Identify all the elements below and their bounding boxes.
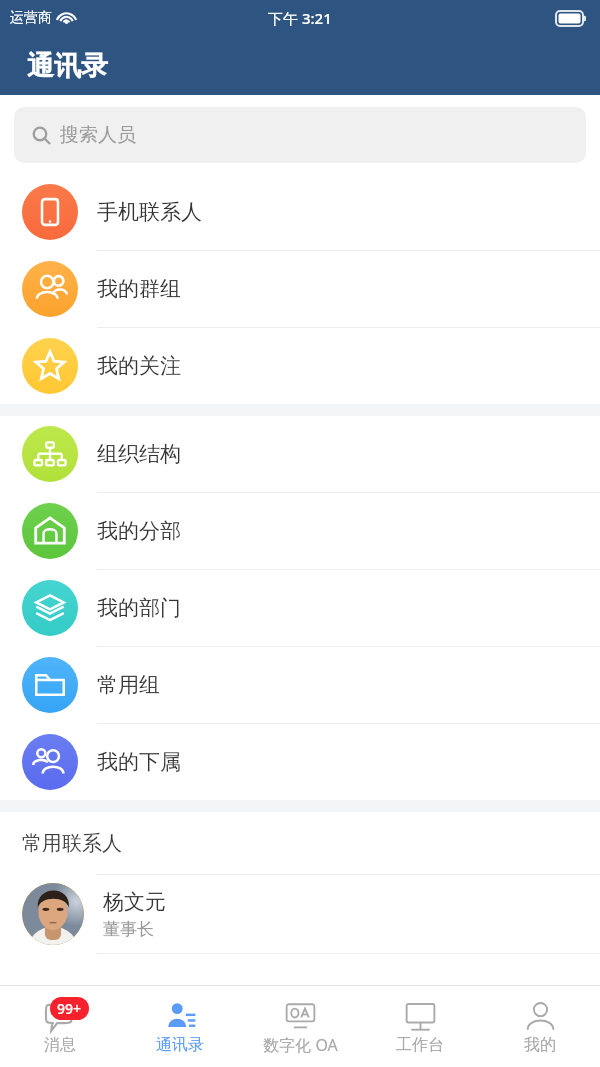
button[interactable]: 99+ bbox=[0, 986, 120, 1067]
button[interactable]: 我的部门 bbox=[0, 570, 600, 646]
staticText: 我的 bbox=[524, 1035, 556, 1055]
staticText: 工作台 bbox=[396, 1035, 444, 1055]
button[interactable]: 我的群组 bbox=[0, 251, 600, 327]
staticText: 通讯录 bbox=[27, 49, 108, 83]
staticText: 杨文元 bbox=[103, 889, 166, 915]
staticText: 我的群组 bbox=[97, 276, 181, 302]
staticText: 99+ bbox=[57, 999, 82, 1018]
button[interactable]: 我的 bbox=[480, 986, 600, 1067]
staticText: 数字化 OA bbox=[263, 1034, 338, 1056]
button[interactable]: 通讯录 bbox=[120, 986, 240, 1067]
button[interactable]: 我的分部 bbox=[0, 493, 600, 569]
button[interactable]: 组织结构 bbox=[0, 416, 600, 492]
staticText: 消息 bbox=[44, 1035, 76, 1055]
staticText: 我的关注 bbox=[97, 353, 181, 379]
button[interactable]: 杨文元 bbox=[0, 875, 600, 953]
button[interactable]: 工作台 bbox=[360, 986, 480, 1067]
staticText: 常用联系人 bbox=[22, 831, 122, 856]
staticText: 我的分部 bbox=[97, 518, 181, 544]
button[interactable]: 我的关注 bbox=[0, 328, 600, 404]
button[interactable]: 我的下属 bbox=[0, 724, 600, 800]
staticText: 下午 3:21 bbox=[268, 8, 332, 28]
staticText: 通讯录 bbox=[156, 1035, 204, 1055]
staticText: 董事长 bbox=[103, 919, 154, 940]
staticText: 我的下属 bbox=[97, 749, 181, 775]
staticText: 运营商 bbox=[10, 9, 52, 27]
staticText: 我的部门 bbox=[97, 595, 181, 621]
button[interactable]: 常用组 bbox=[0, 647, 600, 723]
staticText: 搜索人员 bbox=[60, 123, 136, 147]
button[interactable]: 手机联系人 bbox=[0, 174, 600, 250]
button[interactable]: 数字化 OA bbox=[240, 986, 360, 1067]
staticText: 常用组 bbox=[97, 672, 160, 698]
staticText: 组织结构 bbox=[97, 441, 181, 467]
button[interactable]: 搜索人员 bbox=[14, 107, 586, 163]
staticText: 手机联系人 bbox=[97, 199, 202, 225]
